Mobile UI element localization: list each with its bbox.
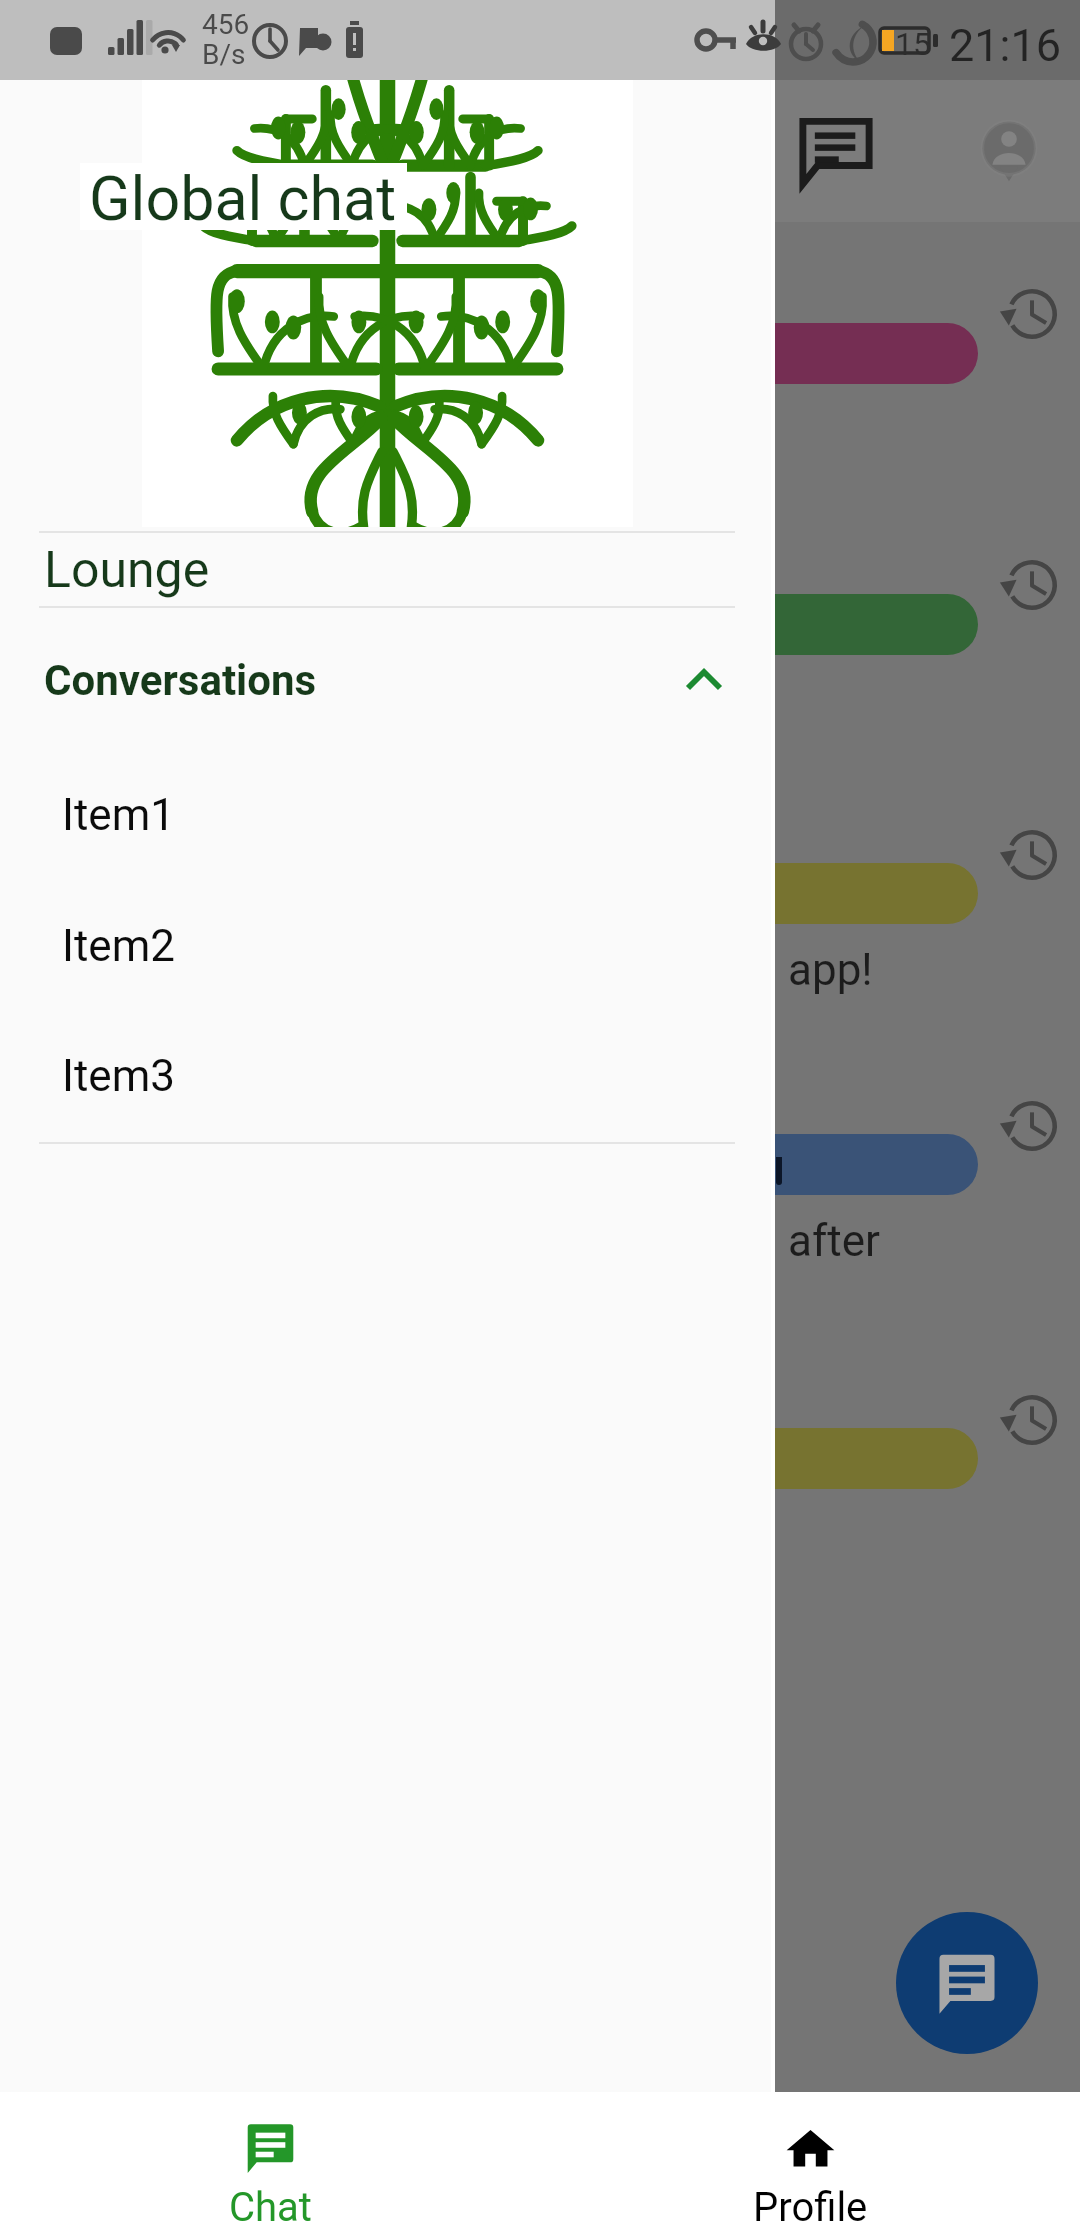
staticText: 15 (895, 25, 931, 63)
staticText: Item2 (62, 920, 176, 972)
staticText: Item1 (62, 789, 176, 841)
button[interactable]: History (1000, 1388, 1064, 1452)
staticText: Chat (229, 2184, 312, 2231)
button[interactable]: New chat (896, 1912, 1038, 2054)
staticText: Lounge (44, 541, 210, 600)
staticText: Conversations (44, 656, 317, 705)
staticText: Profile (753, 2184, 868, 2231)
button[interactable]: Chat (0, 2092, 540, 2240)
button[interactable]: Messages (790, 103, 882, 195)
staticText: app! (788, 944, 873, 996)
button[interactable]: History (1000, 823, 1064, 887)
staticText: Item3 (62, 1050, 176, 1102)
button[interactable]: History (1000, 553, 1064, 617)
button[interactable]: Conversations (0, 633, 775, 727)
staticText: 21:16 (949, 19, 1062, 72)
button[interactable]: History (1000, 282, 1064, 346)
button[interactable]: Account (963, 104, 1055, 196)
button[interactable]: Item2 (0, 896, 775, 996)
staticText: Global chat (89, 163, 397, 230)
button[interactable]: Profile (540, 2092, 1080, 2240)
staticText: after (788, 1215, 880, 1267)
button[interactable]: Lounge (0, 534, 775, 606)
staticText: B/s (202, 38, 246, 71)
button[interactable]: History (1000, 1094, 1064, 1158)
button[interactable]: Item3 (0, 1026, 775, 1126)
staticText: 456 (202, 8, 250, 41)
button[interactable]: Item1 (0, 765, 775, 865)
